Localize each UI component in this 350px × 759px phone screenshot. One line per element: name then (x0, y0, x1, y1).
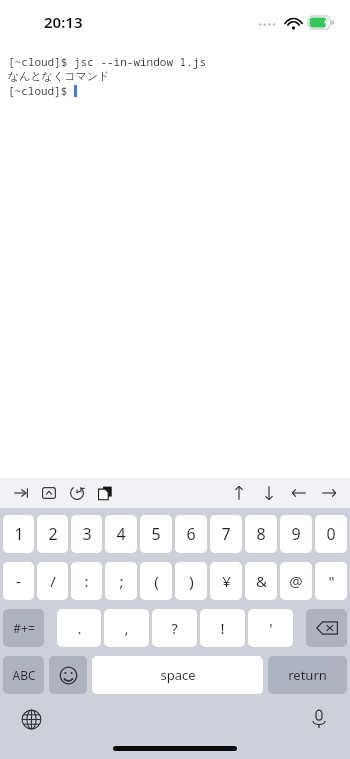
button[interactable]: ! (200, 609, 245, 647)
staticText: ABC (12, 667, 36, 683)
button[interactable]: Arrow left (288, 482, 310, 504)
button[interactable]: 1 (3, 515, 34, 553)
button[interactable]: Dictation (306, 706, 332, 732)
button[interactable]: / (37, 562, 68, 600)
staticText: [~cloud]$ (8, 83, 74, 98)
staticText: ! (220, 618, 225, 638)
button[interactable]: 7 (210, 515, 242, 553)
staticText: 4 (116, 523, 126, 545)
button[interactable]: space (92, 656, 263, 694)
button[interactable]: Arrow right (318, 482, 340, 504)
staticText: 3 (82, 523, 92, 545)
staticText: , (124, 618, 129, 638)
button[interactable]: : (71, 562, 102, 600)
button[interactable]: Emoji (49, 656, 87, 694)
button[interactable]: ABC (3, 656, 44, 694)
button[interactable]: Arrow down (258, 482, 280, 504)
staticText: 5 (151, 523, 161, 545)
staticText: 0 (326, 523, 336, 545)
button[interactable]: Tab (10, 482, 32, 504)
button[interactable]: - (3, 562, 34, 600)
staticText: 20:13 (44, 12, 83, 32)
staticText: 7 (221, 523, 231, 545)
staticText: ¥ (222, 571, 231, 591)
button[interactable]: @ (280, 562, 312, 600)
staticText: @ (289, 571, 303, 591)
button[interactable]: Backspace (306, 609, 347, 647)
staticText: & (256, 571, 267, 591)
button[interactable]: ) (175, 562, 207, 600)
button[interactable]: 4 (105, 515, 137, 553)
staticText: ' (269, 618, 273, 638)
button[interactable]: 6 (175, 515, 207, 553)
button[interactable]: ' (248, 609, 293, 647)
button[interactable]: , (104, 609, 149, 647)
button[interactable]: Change keyboard language (18, 706, 44, 732)
staticText: ? (171, 618, 178, 638)
button[interactable]: Arrow up (228, 482, 250, 504)
button[interactable]: ? (152, 609, 197, 647)
staticText: [~cloud]$ jsc --in-window 1.js (8, 54, 206, 69)
button[interactable]: #+= (3, 609, 44, 647)
button[interactable]: Paste (94, 482, 116, 504)
staticText: 9 (291, 523, 301, 545)
button[interactable]: 9 (280, 515, 312, 553)
button[interactable]: ¥ (210, 562, 242, 600)
staticText: - (16, 571, 21, 591)
button[interactable]: return (268, 656, 347, 694)
staticText: : (84, 571, 89, 591)
staticText: / (50, 571, 56, 591)
staticText: . (77, 618, 82, 638)
button[interactable]: ; (105, 562, 137, 600)
staticText: #+= (13, 620, 35, 636)
staticText: space (160, 666, 196, 684)
staticText: なんとなくコマンド (8, 69, 110, 83)
staticText: 8 (256, 523, 266, 545)
button[interactable]: 5 (140, 515, 172, 553)
staticText: return (288, 666, 327, 684)
staticText: 2 (48, 523, 58, 545)
button[interactable]: . (57, 609, 101, 647)
button[interactable]: Control (38, 482, 60, 504)
staticText: 1 (14, 523, 24, 545)
button[interactable]: Undo (66, 482, 88, 504)
button[interactable]: 2 (37, 515, 68, 553)
button[interactable]: & (245, 562, 277, 600)
staticText: ; (119, 571, 124, 591)
button[interactable]: " (315, 562, 347, 600)
button[interactable]: 3 (71, 515, 102, 553)
button[interactable]: 0 (315, 515, 347, 553)
staticText: ) (189, 571, 194, 591)
staticText: ( (154, 571, 159, 591)
staticText: " (328, 571, 335, 591)
button[interactable]: 8 (245, 515, 277, 553)
staticText: 6 (186, 523, 196, 545)
button[interactable]: ( (140, 562, 172, 600)
